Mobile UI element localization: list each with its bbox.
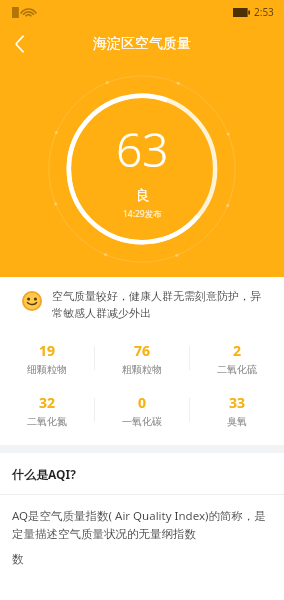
staticText: 臭氧 <box>227 415 247 428</box>
staticText: 二氧化氮 <box>27 415 67 428</box>
button[interactable]: 76 <box>95 341 189 376</box>
staticText: 63 <box>116 118 169 181</box>
button[interactable]: Back <box>0 24 40 64</box>
staticText: 什么是AQI? <box>12 466 76 482</box>
staticText: 19 <box>39 341 56 360</box>
staticText: 粗颗粒物 <box>122 363 162 376</box>
staticText: 细颗粒物 <box>27 363 67 376</box>
staticText: 32 <box>39 393 56 412</box>
staticText: 2:53 <box>254 5 274 19</box>
staticText: AQ是空气质量指数( Air Quality Index)的简称，是定量描述空气… <box>12 508 272 542</box>
staticText: 数 <box>12 552 24 566</box>
button[interactable]: 33 <box>190 393 284 428</box>
button[interactable]: 32 <box>0 393 94 428</box>
button[interactable]: 2 <box>190 341 284 376</box>
staticText: 14:29发布 <box>123 208 162 220</box>
button[interactable]: 19 <box>0 341 94 376</box>
staticText: 33 <box>229 393 246 412</box>
staticText: 一氧化碳 <box>122 415 162 428</box>
staticText: 76 <box>134 341 151 360</box>
staticText: 0 <box>138 393 147 412</box>
staticText: 海淀区空气质量 <box>93 35 191 53</box>
button[interactable]: 0 <box>95 393 189 428</box>
staticText: 良 <box>136 187 150 205</box>
staticText: 空气质量较好，健康人群无需刻意防护，异常敏感人群减少外出 <box>52 289 264 321</box>
staticText: 2 <box>233 341 242 360</box>
staticText: 二氧化硫 <box>217 363 257 376</box>
